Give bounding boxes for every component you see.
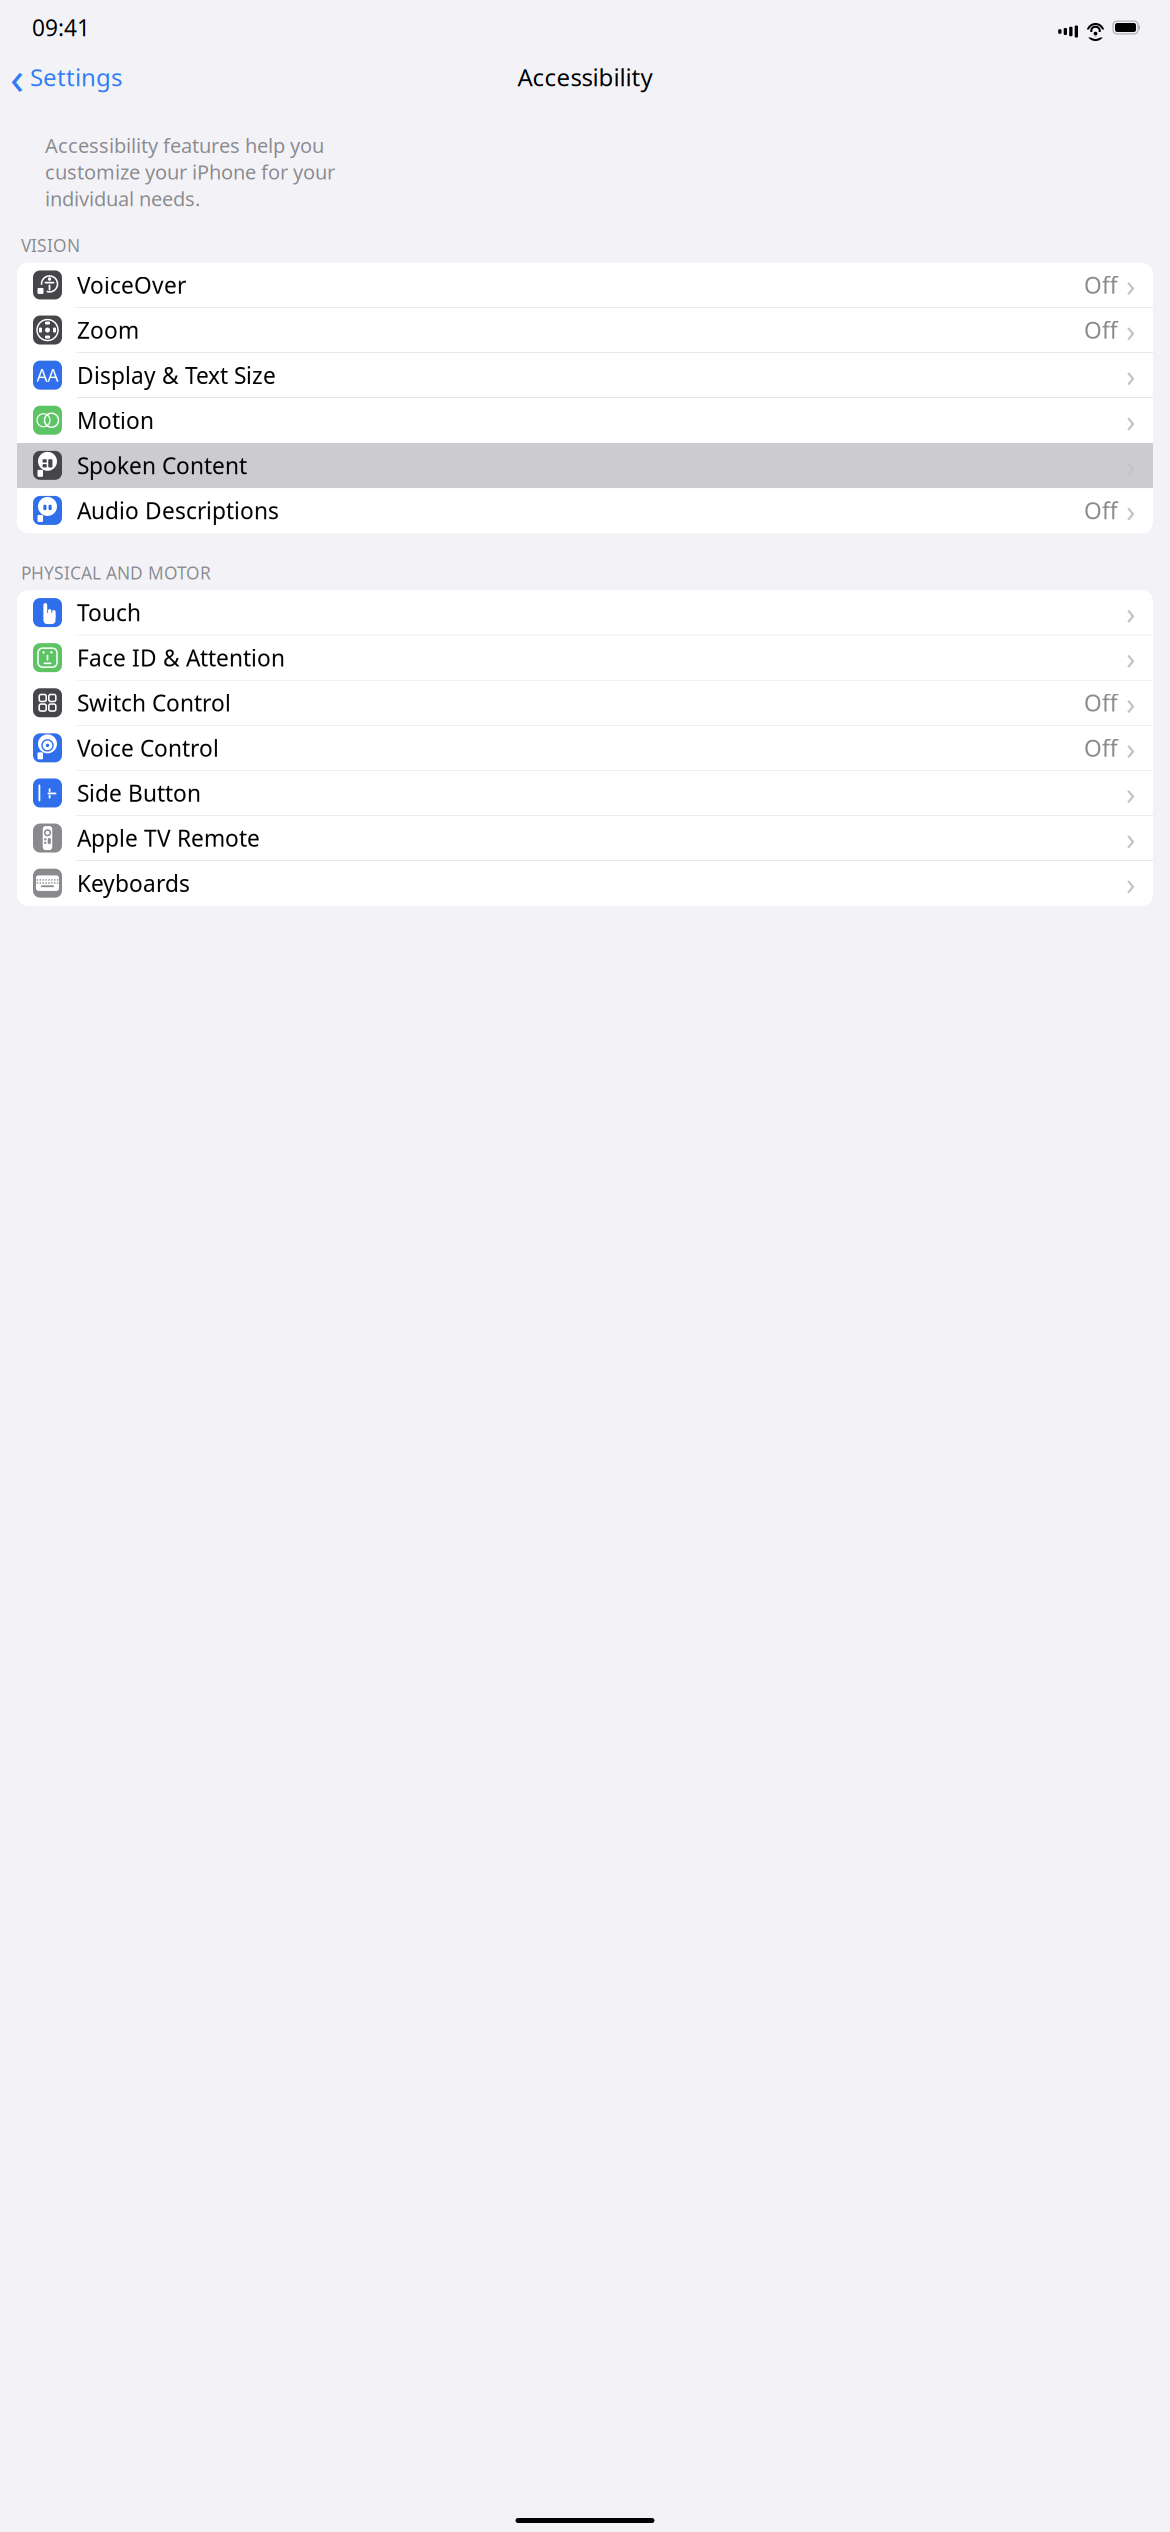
staticText: Apple TV Remote: [77, 823, 260, 853]
staticText: ›: [1126, 773, 1136, 813]
staticText: Touch: [77, 597, 141, 628]
staticText: VISION: [21, 234, 80, 257]
staticText: ›: [1126, 637, 1136, 678]
staticText: Off: [1084, 270, 1118, 300]
button[interactable]: Keyboards: [17, 861, 1153, 906]
staticText: Accessibility: [517, 61, 652, 93]
staticText: Accessibility features help you customiz…: [45, 132, 335, 212]
staticText: Switch Control: [77, 688, 231, 718]
button[interactable]: AA: [17, 353, 1153, 398]
staticText: ›: [1126, 682, 1136, 723]
staticText: Audio Descriptions: [77, 495, 279, 525]
button[interactable]: Face ID & Attention: [17, 635, 1153, 680]
staticText: Face ID & Attention: [77, 643, 285, 673]
button[interactable]: Motion: [17, 398, 1153, 443]
staticText: ‹: [10, 47, 24, 107]
button[interactable]: Audio Descriptions: [17, 488, 1153, 533]
staticText: ›: [1126, 490, 1136, 531]
staticText: ›: [1126, 400, 1136, 441]
button[interactable]: Voice Control: [17, 726, 1153, 771]
staticText: Spoken Content: [77, 450, 247, 480]
staticText: ›: [1126, 592, 1136, 633]
staticText: ›: [1126, 727, 1136, 768]
staticText: AA: [36, 364, 58, 387]
button[interactable]: VoiceOver: [17, 263, 1153, 308]
button[interactable]: Touch: [17, 590, 1153, 635]
staticText: Zoom: [77, 315, 139, 345]
staticText: Display & Text Size: [77, 360, 276, 390]
staticText: Settings: [30, 61, 122, 93]
staticText: Motion: [77, 405, 154, 435]
staticText: Off: [1084, 495, 1118, 525]
button[interactable]: Apple TV Remote: [17, 816, 1153, 861]
button[interactable]: Spoken Content: [17, 443, 1153, 488]
button[interactable]: Switch Control: [17, 680, 1153, 726]
button[interactable]: ‹: [0, 55, 132, 99]
staticText: Side Button: [77, 778, 201, 808]
staticText: PHYSICAL AND MOTOR: [21, 561, 211, 584]
button[interactable]: Side Button: [17, 771, 1153, 816]
staticText: Off: [1084, 688, 1118, 718]
staticText: ›: [1126, 265, 1136, 305]
staticText: Voice Control: [77, 733, 219, 763]
staticText: 09:41: [32, 12, 90, 42]
staticText: ›: [1126, 863, 1136, 903]
staticText: Off: [1084, 315, 1118, 345]
button[interactable]: Zoom: [17, 308, 1153, 353]
staticText: ›: [1126, 818, 1136, 858]
staticText: Off: [1084, 733, 1118, 763]
staticText: VoiceOver: [77, 270, 186, 300]
staticText: ›: [1126, 355, 1136, 395]
staticText: Keyboards: [77, 868, 190, 898]
staticText: ›: [1126, 310, 1136, 350]
